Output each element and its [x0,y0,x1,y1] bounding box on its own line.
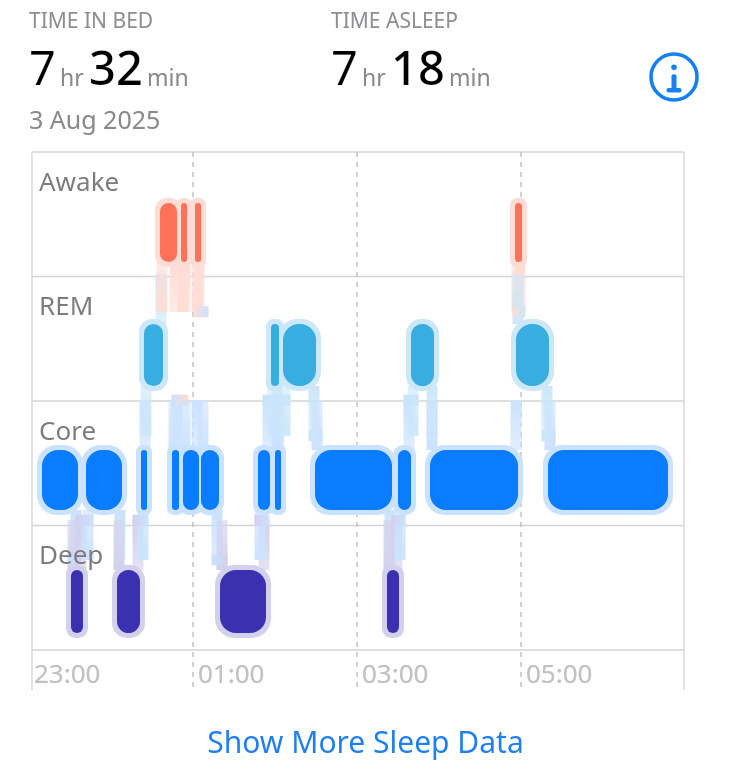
staticText: 7 [29,35,56,99]
staticText: hr [362,61,386,92]
staticText: 32 [89,35,143,99]
staticText: min [449,61,491,92]
staticText: REM [39,287,94,322]
button[interactable]: About sleep stages [645,48,703,106]
staticText: TIME IN BED [29,6,154,35]
staticText: 03:00 [362,655,429,690]
staticText: 01:00 [198,655,265,690]
staticText: Awake [39,163,120,198]
staticText: Core [39,412,97,447]
staticText: hr [60,61,84,92]
staticText: 05:00 [526,655,593,690]
staticText: 3 Aug 2025 [29,102,161,136]
staticText: min [147,61,189,92]
staticText: Deep [39,536,104,571]
staticText: 18 [391,35,445,99]
staticText: Show More Sleep Data [207,721,524,762]
staticText: 7 [331,35,358,99]
button[interactable]: Show More Sleep Data [0,705,730,777]
staticText: TIME ASLEEP [331,6,458,35]
staticText: 23:00 [34,655,101,690]
